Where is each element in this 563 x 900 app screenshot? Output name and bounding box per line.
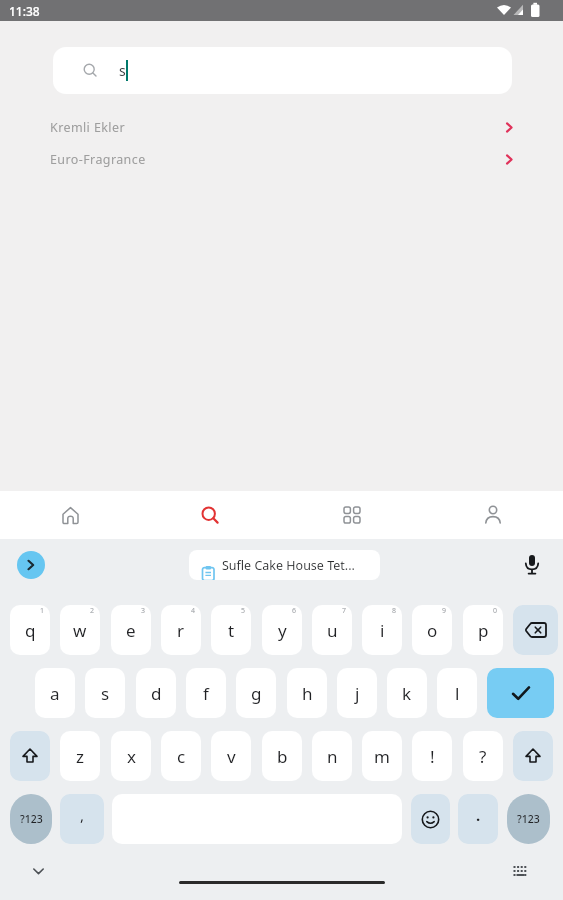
- button[interactable]: s: [53, 47, 512, 94]
- staticText: g: [251, 682, 262, 705]
- staticText: .: [476, 805, 481, 825]
- staticText: m: [374, 745, 390, 768]
- button[interactable]: y: [262, 605, 302, 655]
- staticText: e: [126, 619, 136, 642]
- staticText: 8: [392, 606, 397, 616]
- button[interactable]: r: [161, 605, 201, 655]
- button[interactable]: l: [437, 668, 477, 718]
- button[interactable]: z: [60, 731, 100, 781]
- staticText: j: [355, 682, 360, 705]
- staticText: 4: [191, 606, 196, 616]
- staticText: ?123: [517, 812, 540, 826]
- button[interactable]: [487, 668, 554, 718]
- staticText: s: [101, 682, 110, 705]
- button[interactable]: [0, 491, 140, 539]
- button[interactable]: ?123: [507, 794, 550, 844]
- button[interactable]: s: [85, 668, 125, 718]
- staticText: f: [203, 682, 209, 705]
- staticText: u: [327, 619, 338, 642]
- button[interactable]: ?123: [10, 794, 52, 844]
- button[interactable]: p: [463, 605, 503, 655]
- button[interactable]: .: [458, 794, 498, 844]
- staticText: t: [228, 619, 235, 642]
- staticText: s: [119, 61, 126, 80]
- staticText: ?: [479, 745, 487, 768]
- button[interactable]: g: [236, 668, 276, 718]
- button[interactable]: d: [136, 668, 176, 718]
- button[interactable]: [411, 794, 450, 844]
- staticText: l: [455, 682, 460, 705]
- staticText: q: [25, 619, 36, 642]
- staticText: o: [427, 619, 438, 642]
- button[interactable]: Kremli Ekler: [0, 111, 563, 143]
- button[interactable]: [24, 859, 52, 883]
- button[interactable]: i: [362, 605, 402, 655]
- staticText: 2: [90, 606, 95, 616]
- staticText: i: [380, 619, 385, 642]
- staticText: k: [402, 682, 412, 705]
- button[interactable]: j: [337, 668, 377, 718]
- button[interactable]: v: [211, 731, 251, 781]
- button[interactable]: [10, 731, 50, 781]
- staticText: r: [177, 619, 185, 642]
- button[interactable]: a: [35, 668, 75, 718]
- button[interactable]: c: [161, 731, 201, 781]
- button[interactable]: o: [412, 605, 452, 655]
- staticText: 11:38: [9, 3, 40, 19]
- staticText: !: [430, 745, 435, 768]
- staticText: x: [127, 745, 136, 768]
- staticText: 3: [141, 606, 146, 616]
- staticText: Euro-Fragrance: [50, 151, 146, 168]
- button[interactable]: [513, 605, 558, 655]
- button[interactable]: [422, 491, 563, 539]
- button[interactable]: u: [312, 605, 352, 655]
- button[interactable]: [513, 731, 553, 781]
- staticText: 0: [493, 606, 498, 616]
- button[interactable]: t: [211, 605, 251, 655]
- button[interactable]: w: [60, 605, 100, 655]
- button[interactable]: ?: [463, 731, 503, 781]
- staticText: v: [227, 745, 236, 768]
- staticText: Kremli Ekler: [50, 119, 125, 136]
- staticText: b: [277, 745, 288, 768]
- staticText: n: [327, 745, 338, 768]
- button[interactable]: m: [362, 731, 402, 781]
- button[interactable]: [281, 491, 422, 539]
- button[interactable]: b: [262, 731, 302, 781]
- staticText: 6: [292, 606, 297, 616]
- button[interactable]: ,: [60, 794, 104, 844]
- staticText: 7: [342, 606, 347, 616]
- staticText: Sufle Cake House Tet...: [222, 557, 355, 574]
- staticText: 1: [40, 606, 45, 616]
- button[interactable]: x: [111, 731, 151, 781]
- button[interactable]: [140, 491, 281, 539]
- staticText: c: [177, 745, 186, 768]
- button[interactable]: [518, 550, 546, 580]
- staticText: 5: [241, 606, 246, 616]
- staticText: y: [278, 619, 287, 642]
- staticText: h: [302, 682, 313, 705]
- staticText: a: [50, 682, 60, 705]
- button[interactable]: n: [312, 731, 352, 781]
- staticText: 9: [442, 606, 447, 616]
- button[interactable]: k: [387, 668, 427, 718]
- staticText: ,: [80, 805, 85, 825]
- button[interactable]: Euro-Fragrance: [0, 143, 563, 175]
- button[interactable]: e: [111, 605, 151, 655]
- button[interactable]: [506, 859, 534, 883]
- staticText: d: [151, 682, 162, 705]
- staticText: w: [73, 619, 87, 642]
- staticText: ?123: [20, 812, 43, 826]
- button[interactable]: !: [412, 731, 452, 781]
- button[interactable]: q: [10, 605, 50, 655]
- staticText: p: [478, 619, 489, 642]
- button[interactable]: [17, 551, 45, 579]
- button[interactable]: h: [287, 668, 327, 718]
- staticText: z: [76, 745, 84, 768]
- button[interactable]: f: [186, 668, 226, 718]
- button[interactable]: Sufle Cake House Tet...: [189, 550, 380, 580]
